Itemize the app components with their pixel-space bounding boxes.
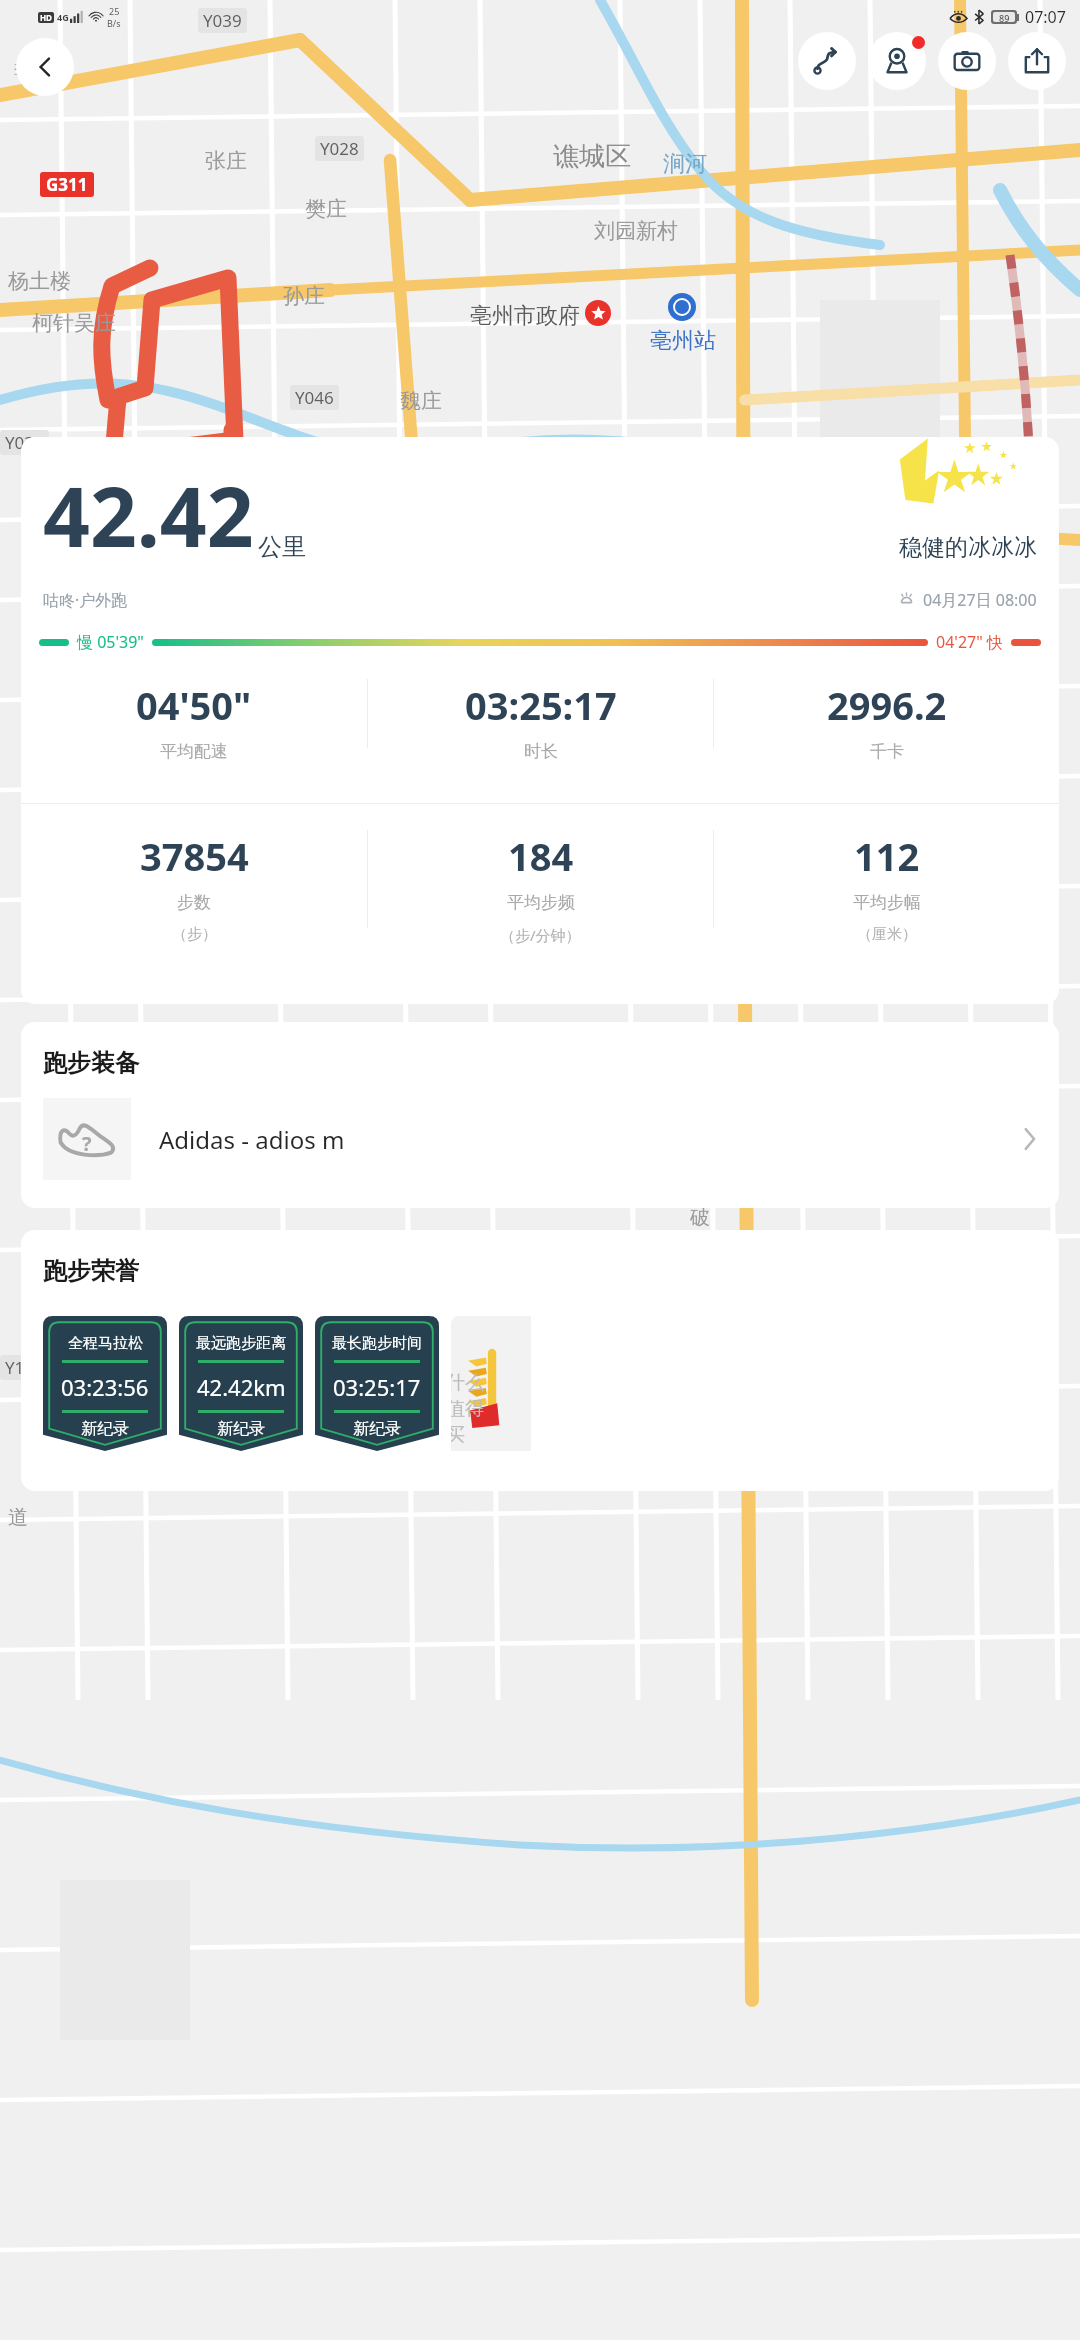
staticText: 04'27" 快 (936, 631, 1003, 653)
staticText: （步/分钟） (500, 925, 581, 945)
staticText: 07:07 (1025, 6, 1066, 28)
staticText: 稳健的冰冰冰 (899, 533, 1037, 562)
staticText: 孙庄 (283, 283, 325, 309)
staticText: 4G (57, 11, 69, 23)
staticText: 涧河 (663, 150, 707, 178)
staticText: 42.42 (43, 459, 254, 571)
staticText: 李岗村 (14, 60, 68, 83)
staticText: 跑步荣誉 (43, 1256, 139, 1286)
staticText: 时长 (524, 741, 558, 762)
staticText: 全程马拉松 (68, 1334, 143, 1353)
staticText: 平均配速 (160, 741, 228, 762)
staticText: 刘园新村 (594, 218, 678, 244)
staticText: 柯针吴庄 (32, 310, 116, 336)
staticText: 张庄 (205, 148, 247, 174)
staticText: Y028 (320, 137, 359, 160)
staticText: 公里 (258, 532, 306, 562)
staticText: 新纪录 (217, 1419, 265, 1439)
staticText: 跑步装备 (43, 1048, 139, 1078)
staticText: 亳州市政府 (470, 302, 580, 330)
button[interactable]: 全程马拉松 (43, 1316, 167, 1451)
button[interactable]: Back (16, 38, 74, 96)
staticText: 25 (109, 5, 120, 17)
button[interactable]: 最长跑步时间 (315, 1316, 439, 1451)
staticText: Y039 (5, 431, 44, 454)
staticText: 184 (508, 830, 574, 882)
staticText: 最长跑步时间 (332, 1334, 422, 1353)
staticText: 什么值得买 (451, 1371, 501, 1447)
staticText: 魏庄 (400, 388, 442, 414)
button[interactable]: Camera (938, 32, 996, 90)
staticText: 37854 (140, 830, 249, 882)
staticText: 道 (8, 1505, 28, 1530)
staticText: 89 (999, 12, 1010, 22)
staticText: 03:25:17 (333, 1372, 421, 1402)
staticText: （厘米） (857, 925, 917, 944)
staticText: 慢 05'39" (77, 631, 144, 653)
staticText: 亳州站 (650, 327, 716, 355)
staticText: 04'50" (136, 679, 252, 731)
button[interactable]: ? (21, 1096, 1059, 1182)
staticText: Adidas - adios m (159, 1123, 345, 1156)
staticText: 新纪录 (353, 1419, 401, 1439)
staticText: B/s (107, 17, 121, 29)
staticText: Y039 (203, 9, 242, 32)
button[interactable]: Route (798, 32, 856, 90)
staticText: 千卡 (870, 741, 904, 762)
staticText: 咕咚·户外跑 (43, 589, 128, 611)
button[interactable]: 值 (451, 1316, 531, 1451)
staticText: 破 (690, 1205, 710, 1230)
staticText: 03:23:56 (61, 1372, 149, 1402)
button[interactable]: Location (868, 32, 926, 90)
staticText: 樊庄 (305, 196, 347, 222)
staticText: 平均步幅 (853, 892, 921, 913)
staticText: 杨土楼 (8, 268, 71, 294)
staticText: 步数 (177, 892, 211, 913)
staticText: 112 (854, 830, 920, 882)
staticText: 新纪录 (81, 1419, 129, 1439)
staticText: HD (40, 12, 52, 23)
staticText: G311 (46, 173, 88, 196)
staticText: （步） (172, 925, 217, 944)
staticText: 最远跑步距离 (196, 1334, 286, 1353)
staticText: Y046 (295, 386, 334, 409)
button[interactable]: 最远跑步距离 (179, 1316, 303, 1451)
staticText: 谯城区 (553, 140, 631, 173)
staticText: 42.42km (197, 1372, 286, 1402)
staticText: 03:25:17 (465, 679, 617, 731)
staticText: 04月27日 08:00 (923, 589, 1037, 611)
button[interactable]: Share (1008, 32, 1066, 90)
staticText: 2996.2 (827, 679, 947, 731)
staticText: 平均步频 (507, 892, 575, 913)
staticText: ? (82, 1130, 92, 1157)
staticText: Y10 (5, 1356, 35, 1379)
